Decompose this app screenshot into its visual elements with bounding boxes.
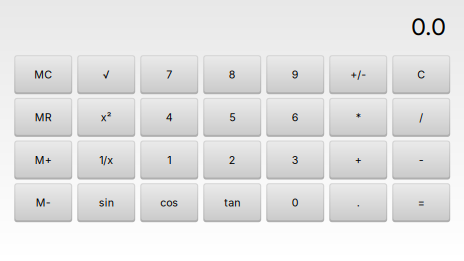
staticText: 2 bbox=[229, 154, 236, 166]
button[interactable]: M- bbox=[14, 183, 72, 222]
staticText: * bbox=[356, 111, 361, 124]
button[interactable]: +/- bbox=[329, 55, 387, 94]
staticText: sin bbox=[99, 196, 114, 209]
button[interactable]: 8 bbox=[203, 55, 261, 94]
button[interactable]: √ bbox=[77, 55, 135, 94]
button[interactable]: x² bbox=[77, 98, 135, 137]
button[interactable]: - bbox=[392, 140, 450, 179]
staticText: +/- bbox=[350, 68, 366, 81]
button[interactable]: 5 bbox=[203, 98, 261, 137]
staticText: + bbox=[355, 154, 362, 166]
staticText: 9 bbox=[292, 68, 299, 81]
staticText: MC bbox=[34, 68, 52, 81]
staticText: cos bbox=[160, 196, 178, 209]
staticText: 3 bbox=[292, 154, 299, 166]
staticText: √ bbox=[103, 68, 110, 81]
staticText: 5 bbox=[229, 111, 235, 124]
staticText: 7 bbox=[166, 68, 172, 81]
button[interactable]: 4 bbox=[140, 98, 198, 137]
staticText: C bbox=[417, 68, 425, 81]
button[interactable]: M+ bbox=[14, 140, 72, 179]
button[interactable]: cos bbox=[140, 183, 198, 222]
staticText: / bbox=[419, 111, 423, 124]
button[interactable]: / bbox=[392, 98, 450, 137]
button[interactable]: 1 bbox=[140, 140, 198, 179]
button[interactable]: MR bbox=[14, 98, 72, 137]
staticText: 1/x bbox=[99, 154, 113, 166]
staticText: . bbox=[357, 196, 360, 209]
button[interactable]: 3 bbox=[266, 140, 324, 179]
staticText: MR bbox=[35, 111, 52, 124]
staticText: 0 bbox=[292, 196, 299, 209]
button[interactable]: tan bbox=[203, 183, 261, 222]
staticText: 8 bbox=[229, 68, 236, 81]
button[interactable]: . bbox=[329, 183, 387, 222]
staticText: 0.0 bbox=[411, 12, 446, 41]
staticText: 4 bbox=[166, 111, 173, 124]
button[interactable]: MC bbox=[14, 55, 72, 94]
button[interactable]: 1/x bbox=[77, 140, 135, 179]
staticText: x² bbox=[101, 111, 112, 124]
button[interactable]: 6 bbox=[266, 98, 324, 137]
staticText: M+ bbox=[35, 154, 52, 166]
button[interactable]: 7 bbox=[140, 55, 198, 94]
button[interactable]: sin bbox=[77, 183, 135, 222]
button[interactable]: 0 bbox=[266, 183, 324, 222]
staticText: tan bbox=[224, 196, 240, 209]
button[interactable]: 2 bbox=[203, 140, 261, 179]
staticText: = bbox=[418, 196, 425, 209]
button[interactable]: * bbox=[329, 98, 387, 137]
staticText: - bbox=[419, 154, 424, 166]
button[interactable]: C bbox=[392, 55, 450, 94]
button[interactable]: + bbox=[329, 140, 387, 179]
button[interactable]: = bbox=[392, 183, 450, 222]
button[interactable]: 9 bbox=[266, 55, 324, 94]
staticText: 6 bbox=[292, 111, 299, 124]
staticText: M- bbox=[36, 196, 51, 209]
staticText: 1 bbox=[167, 154, 171, 166]
